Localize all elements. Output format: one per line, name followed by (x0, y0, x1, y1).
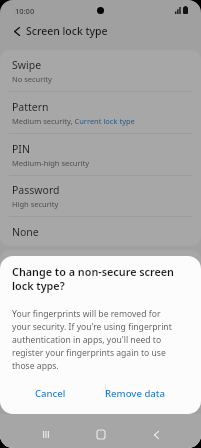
staticText: PIN (12, 142, 30, 156)
staticText: Smart Lock (12, 289, 67, 303)
staticText: Pattern (12, 100, 49, 114)
button[interactable]: PIN (0, 134, 201, 175)
staticText: Biometrics (12, 258, 65, 272)
staticText: No security (12, 74, 52, 84)
staticText: Medium security, Current lock type (12, 116, 135, 126)
staticText: Swipe (12, 58, 42, 72)
button[interactable]: Back (142, 420, 171, 448)
staticText: Screen lock type (26, 24, 108, 38)
staticText: 10:00 (15, 6, 35, 16)
staticText: High security (12, 199, 59, 209)
staticText: Change to a non-secure screen lock type? (12, 264, 178, 293)
button[interactable]: Smart Lock (0, 281, 201, 311)
button[interactable]: Pattern (0, 92, 201, 133)
button[interactable]: Cancel (23, 382, 77, 404)
staticText: Medium-high security (12, 158, 90, 168)
button[interactable]: Password (0, 176, 201, 216)
button[interactable]: Recent apps (31, 420, 60, 448)
staticText: Your fingerprints will be removed for yo… (12, 308, 175, 372)
button[interactable]: Remove data (104, 382, 166, 404)
button[interactable]: Home (86, 420, 115, 448)
staticText: None (12, 225, 39, 239)
button[interactable]: None (0, 217, 201, 246)
staticText: Cancel (35, 387, 66, 400)
button[interactable]: Biometrics (0, 250, 201, 280)
button[interactable]: Back (6, 20, 28, 42)
button[interactable]: Swipe (0, 50, 201, 91)
staticText: Password (12, 183, 60, 197)
staticText: Remove data (105, 387, 165, 400)
